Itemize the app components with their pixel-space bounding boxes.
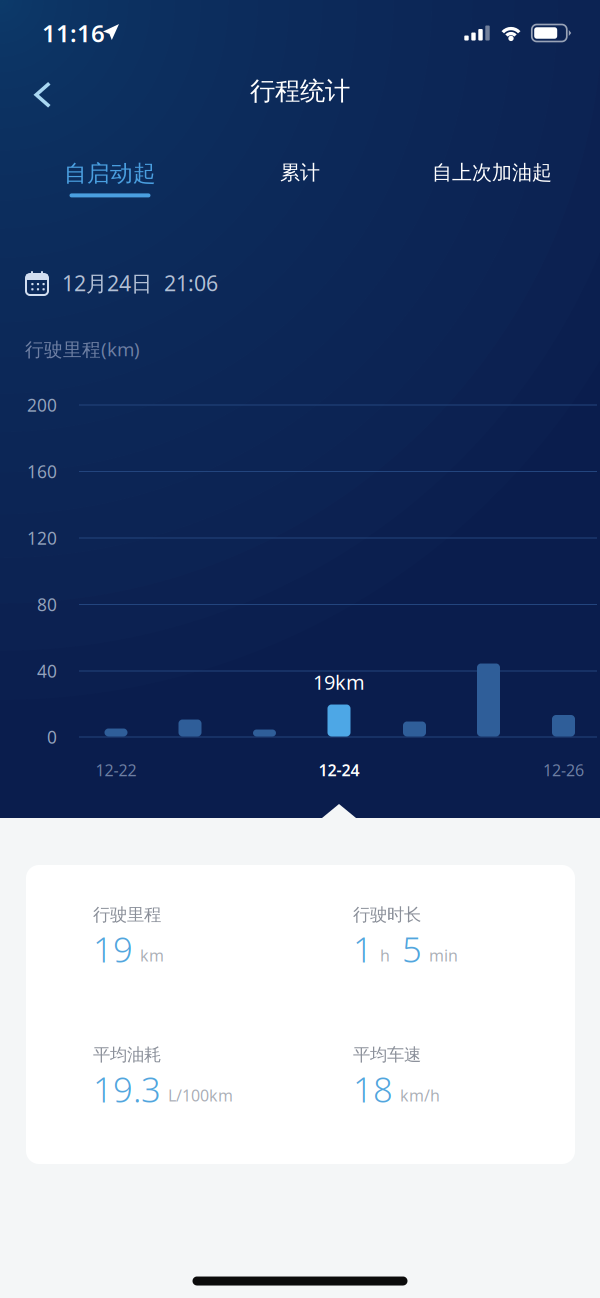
- staticText: 11:16: [42, 17, 105, 49]
- staticText: 行程统计: [250, 75, 350, 106]
- staticText: 自启动起: [64, 160, 156, 187]
- staticText: 160: [27, 460, 57, 483]
- staticText: 自上次加油起: [432, 160, 552, 185]
- staticText: h: [380, 945, 390, 966]
- staticText: 累计: [280, 160, 320, 185]
- staticText: 200: [27, 393, 57, 416]
- staticText: 18: [353, 1066, 393, 1112]
- staticText: 1: [353, 926, 373, 972]
- staticText: km: [140, 945, 164, 966]
- button[interactable]: 自启动起: [54, 150, 166, 207]
- staticText: 5: [402, 926, 422, 972]
- staticText: 12-26: [543, 759, 584, 781]
- staticText: 40: [37, 659, 57, 682]
- staticText: 19.3: [93, 1066, 161, 1112]
- staticText: 19km: [313, 669, 365, 695]
- button[interactable]: 累计: [265, 155, 335, 189]
- staticText: 80: [37, 593, 57, 616]
- staticText: 0: [47, 725, 57, 748]
- staticText: 行驶里程: [93, 904, 161, 925]
- button[interactable]: 自上次加油起: [417, 155, 567, 189]
- staticText: 行驶里程(km): [25, 337, 140, 361]
- button[interactable]: Back: [14, 67, 70, 123]
- staticText: 12-24: [318, 759, 359, 781]
- staticText: 120: [27, 526, 57, 549]
- staticText: L/100km: [168, 1085, 233, 1106]
- staticText: 19: [93, 926, 133, 972]
- staticText: min: [429, 945, 458, 966]
- staticText: 平均车速: [353, 1044, 421, 1065]
- staticText: km/h: [400, 1085, 440, 1106]
- staticText: 12月24日 21:06: [62, 269, 218, 297]
- staticText: 平均油耗: [93, 1044, 161, 1065]
- staticText: 行驶时长: [353, 904, 421, 925]
- staticText: 12-22: [95, 759, 136, 781]
